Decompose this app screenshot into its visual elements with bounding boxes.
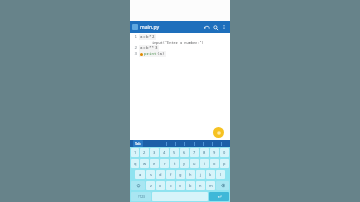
button[interactable]: Search	[211, 23, 220, 32]
button[interactable]: r	[160, 159, 169, 168]
staticText: =	[143, 34, 146, 40]
button[interactable]: y	[180, 159, 189, 168]
staticText: m	[209, 183, 213, 188]
button[interactable]: b	[186, 181, 195, 190]
staticText: 3	[130, 51, 137, 57]
button[interactable]: ?123	[131, 192, 151, 201]
staticText: a	[139, 172, 142, 177]
staticText: w	[143, 161, 147, 166]
button[interactable]: o	[210, 159, 219, 168]
staticText: b	[146, 45, 149, 51]
staticText: **	[149, 45, 155, 51]
staticText: h	[189, 172, 192, 177]
button[interactable]: Backspace	[216, 181, 229, 190]
staticText: 1	[130, 34, 137, 40]
button[interactable]: s	[146, 170, 155, 179]
button[interactable]: x	[156, 181, 165, 190]
button[interactable]: u	[190, 159, 199, 168]
button[interactable]: 1	[131, 148, 139, 157]
staticText: f	[170, 172, 172, 177]
staticText: r	[164, 161, 166, 166]
button[interactable]: 2	[130, 45, 230, 51]
staticText: 2	[152, 34, 155, 40]
button[interactable]: q	[131, 159, 139, 168]
staticText: 9	[213, 150, 216, 155]
staticText: y	[183, 161, 186, 166]
staticText: 8	[203, 150, 206, 155]
button[interactable]: w	[140, 159, 149, 168]
button[interactable]: l	[216, 170, 225, 179]
button[interactable]: z	[146, 181, 155, 190]
button[interactable]: c	[166, 181, 175, 190]
staticText: Tab	[135, 141, 141, 146]
staticText: 2	[143, 150, 146, 155]
button[interactable]: Shift	[131, 181, 145, 190]
staticText: ?123	[138, 195, 145, 199]
button[interactable]: 1	[130, 34, 230, 40]
button[interactable]: 9	[210, 148, 219, 157]
staticText: *	[149, 34, 152, 40]
staticText: s	[150, 172, 152, 177]
staticText: z	[150, 183, 152, 188]
button[interactable]: 0	[220, 148, 229, 157]
staticText: b	[189, 183, 192, 188]
staticText: 3	[155, 45, 158, 51]
button[interactable]: t	[170, 159, 179, 168]
button[interactable]: e	[150, 159, 159, 168]
button[interactable]: 7	[190, 148, 199, 157]
staticText: k	[209, 172, 212, 177]
staticText: main.py	[140, 24, 160, 31]
button[interactable]: Run	[213, 127, 224, 138]
staticText: a	[140, 34, 143, 40]
button[interactable]: i	[200, 159, 209, 168]
button[interactable]: a	[135, 170, 145, 179]
button[interactable]: 8	[200, 148, 209, 157]
button[interactable]: m	[206, 181, 215, 190]
staticText: v	[179, 183, 182, 188]
button[interactable]: 5	[170, 148, 179, 157]
button[interactable]: 6	[180, 148, 189, 157]
staticText: print	[144, 51, 157, 57]
staticText: 2	[130, 45, 137, 51]
button[interactable]: g	[176, 170, 185, 179]
button[interactable]: h	[186, 170, 195, 179]
staticText: 5	[173, 150, 176, 155]
button[interactable]: 2	[140, 148, 149, 157]
staticText: (a)	[157, 51, 165, 57]
staticText: q	[134, 161, 137, 166]
staticText: l	[220, 172, 222, 177]
staticText: 1	[134, 150, 137, 155]
staticText: p	[223, 161, 226, 166]
staticText: =	[143, 45, 146, 51]
button[interactable]: v	[176, 181, 185, 190]
button[interactable]: j	[196, 170, 205, 179]
staticText: input("Enter a number:")	[152, 40, 204, 45]
staticText: c	[170, 183, 172, 188]
staticText: t	[174, 161, 176, 166]
staticText: i	[204, 161, 206, 166]
button[interactable]: 3	[150, 148, 159, 157]
staticText: a	[140, 45, 143, 51]
button[interactable]: Enter	[209, 192, 229, 201]
staticText: x	[159, 183, 162, 188]
staticText: j	[200, 172, 202, 177]
button[interactable]: More options	[220, 23, 228, 31]
staticText: n	[199, 183, 202, 188]
staticText: u	[193, 161, 196, 166]
staticText: 0	[223, 150, 226, 155]
button[interactable]: p	[220, 159, 229, 168]
button[interactable]: n	[196, 181, 205, 190]
button[interactable]: f	[166, 170, 175, 179]
staticText: b	[146, 34, 149, 40]
button[interactable]: 4	[160, 148, 169, 157]
button[interactable]: Undo	[202, 23, 211, 32]
staticText: 6	[183, 150, 186, 155]
staticText: 4	[163, 150, 166, 155]
button[interactable]: k	[206, 170, 215, 179]
button[interactable]: 3	[130, 51, 230, 57]
button[interactable]: App icon	[132, 24, 138, 30]
button[interactable]: d	[156, 170, 165, 179]
staticText: 7	[193, 150, 196, 155]
button[interactable]: Tab	[135, 141, 141, 146]
